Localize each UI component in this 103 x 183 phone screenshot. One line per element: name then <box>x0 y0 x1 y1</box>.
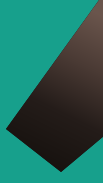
button[interactable] <box>0 0 103 183</box>
